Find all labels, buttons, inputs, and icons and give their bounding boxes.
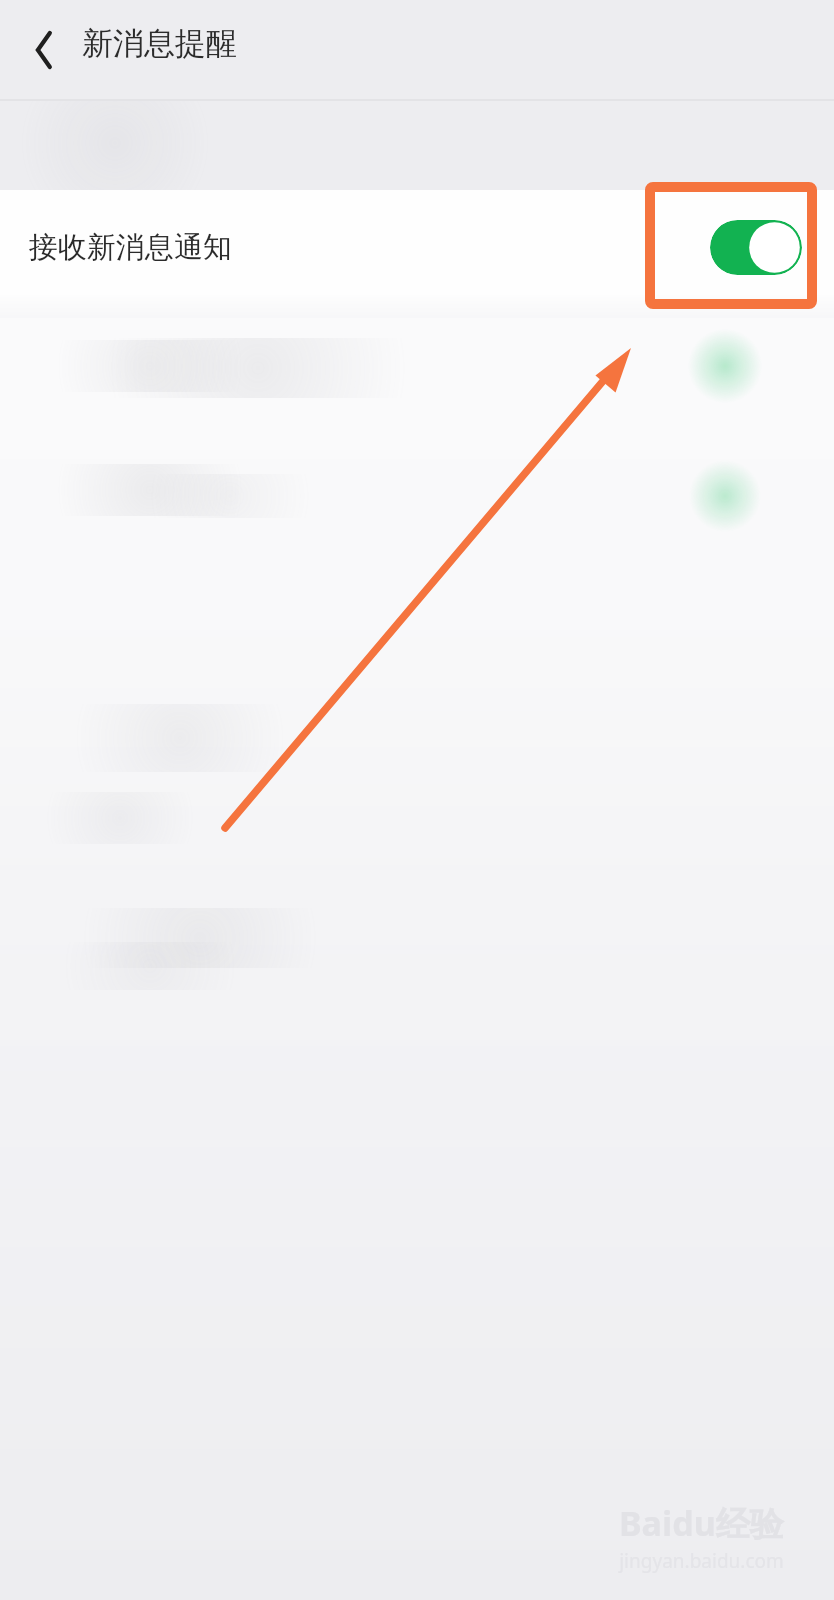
staticText: 接收新消息通知 — [29, 229, 232, 266]
button[interactable]: 接收新消息通知 — [0, 190, 834, 305]
staticText: jingyan.baidu.com — [619, 1548, 784, 1574]
button[interactable]: Back — [8, 18, 72, 82]
button[interactable]: 接收新消息通知 开关 — [710, 220, 802, 275]
staticText: Baidu经验 — [619, 1500, 784, 1546]
staticText: 新消息提醒 — [82, 24, 237, 63]
